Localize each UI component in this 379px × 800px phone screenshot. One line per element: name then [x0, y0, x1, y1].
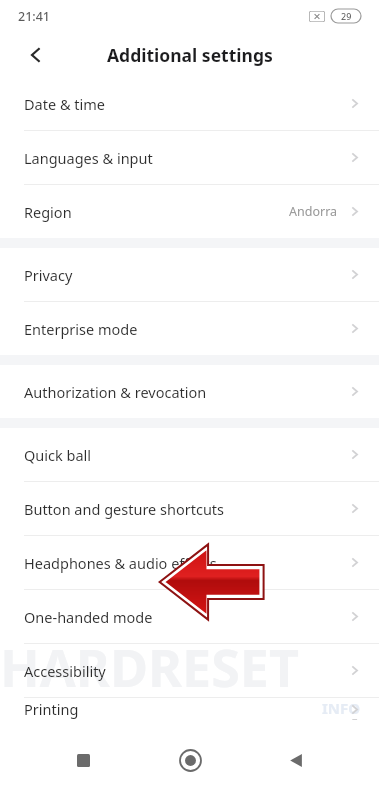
staticText: Andorra	[289, 203, 338, 220]
button[interactable]: Region	[0, 185, 379, 238]
staticText: Quick ball	[24, 445, 92, 465]
staticText: Date & time	[24, 94, 105, 114]
button[interactable]: Recents	[59, 736, 107, 784]
button[interactable]: Quick ball	[0, 428, 379, 481]
button[interactable]: Date & time	[0, 77, 379, 130]
staticText: Button and gesture shortcuts	[24, 499, 225, 519]
staticText: Languages & input	[24, 148, 153, 168]
staticText: Headphones & audio effects	[24, 553, 217, 573]
staticText: Enterprise mode	[24, 319, 138, 339]
button[interactable]: Back	[272, 736, 320, 784]
staticText: Authorization & revocation	[24, 382, 207, 402]
staticText: 29	[341, 10, 352, 22]
button[interactable]: Accessibility	[0, 644, 379, 697]
staticText: 21:41	[18, 8, 51, 25]
staticText: HARDRESET	[0, 631, 299, 702]
button[interactable]: Button and gesture shortcuts	[0, 482, 379, 535]
staticText: INFO	[322, 698, 361, 718]
staticText: One-handed mode	[24, 607, 153, 627]
button[interactable]: Back	[16, 35, 56, 75]
staticText: Printing	[24, 699, 79, 719]
button[interactable]: Home	[166, 736, 214, 784]
staticText: Accessibility	[24, 661, 106, 681]
staticText: Additional settings	[107, 43, 273, 67]
button[interactable]: Printing	[0, 698, 379, 720]
staticText: Privacy	[24, 265, 73, 285]
button[interactable]: One-handed mode	[0, 590, 379, 643]
button[interactable]: Headphones & audio effects	[0, 536, 379, 589]
button[interactable]: Languages & input	[0, 131, 379, 184]
button[interactable]: Enterprise mode	[0, 302, 379, 355]
button[interactable]: Authorization & revocation	[0, 365, 379, 418]
staticText: Region	[24, 202, 72, 222]
button[interactable]: Privacy	[0, 248, 379, 301]
